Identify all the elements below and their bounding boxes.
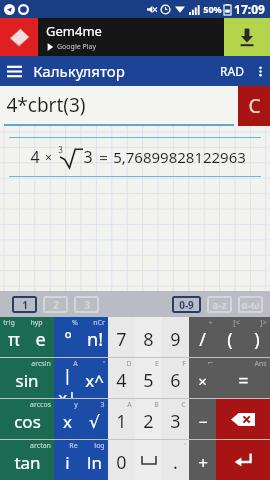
- button[interactable]: 2: [43, 296, 68, 313]
- staticText: 50%: [203, 3, 222, 15]
- button[interactable]: y: [54, 399, 81, 439]
- staticText: a-z: [212, 298, 227, 312]
- button[interactable]: C: [162, 399, 189, 439]
- staticText: 2: [143, 409, 154, 434]
- button[interactable]: 9: [162, 317, 189, 357]
- staticText: 0: [116, 450, 127, 475]
- staticText: sin: [15, 369, 39, 392]
- button[interactable]: −: [189, 399, 216, 439]
- staticText: A: [73, 359, 78, 369]
- button[interactable]: Enter: [216, 440, 270, 480]
- staticText: arctan: [30, 441, 51, 451]
- button[interactable]: hyp: [27, 317, 54, 357]
- staticText: ln: [87, 451, 102, 474]
- button[interactable]: arctan: [0, 440, 54, 480]
- button[interactable]: 4: [9, 137, 261, 177]
- button[interactable]: D: [108, 358, 135, 398]
- button[interactable]: ÷: [189, 317, 216, 357]
- button[interactable]: [<: [216, 317, 243, 357]
- staticText: =: [99, 147, 108, 167]
- staticText: ': [184, 441, 186, 451]
- button[interactable]: ': [162, 440, 189, 480]
- button[interactable]: B: [135, 399, 162, 439]
- staticText: i: [65, 451, 70, 474]
- button[interactable]: ]>: [243, 317, 270, 357]
- button[interactable]: 8: [135, 317, 162, 357]
- button[interactable]: ': [81, 358, 108, 398]
- button[interactable]: A: [54, 358, 81, 398]
- button[interactable]: α-ω: [238, 296, 263, 313]
- button[interactable]: 0-9: [172, 296, 201, 313]
- staticText: F: [182, 359, 186, 369]
- button[interactable]: 3: [81, 399, 108, 439]
- staticText: 2: [53, 298, 59, 312]
- staticText: [<: [233, 318, 240, 328]
- staticText: x^: [85, 369, 104, 392]
- button[interactable]: F: [162, 358, 189, 398]
- button[interactable]: 1: [12, 296, 37, 313]
- button[interactable]: 3: [74, 296, 99, 313]
- staticText: |x|: [54, 363, 81, 398]
- button[interactable]: nCr: [81, 317, 108, 357]
- button[interactable]: arcsin: [0, 358, 54, 398]
- staticText: D: [126, 359, 132, 369]
- staticText: α-ω: [241, 298, 260, 312]
- button[interactable]: +: [189, 440, 216, 480]
- staticText: Ans: [254, 359, 267, 369]
- button[interactable]: Gem4me: [0, 18, 270, 56]
- staticText: (: [227, 327, 233, 352]
- staticText: A: [127, 400, 132, 410]
- staticText: 3: [84, 298, 90, 312]
- button[interactable]: log: [81, 440, 108, 480]
- staticText: E: [155, 359, 159, 369]
- staticText: B: [154, 400, 159, 410]
- staticText: 4*cbrt(3): [6, 92, 86, 118]
- staticText: ': [103, 359, 105, 369]
- staticText: 4: [30, 146, 40, 168]
- staticText: x: [63, 410, 72, 433]
- staticText: 7: [116, 327, 127, 352]
- button[interactable]: RAD: [220, 63, 244, 79]
- staticText: Калькулятор: [33, 61, 125, 81]
- button[interactable]: Menu: [0, 57, 28, 85]
- button[interactable]: Install: [224, 18, 270, 56]
- staticText: π: [8, 327, 20, 352]
- button[interactable]: ⌐: [189, 358, 216, 398]
- staticText: e: [35, 327, 46, 352]
- staticText: =: [238, 368, 249, 393]
- button[interactable]: a-z: [207, 296, 232, 313]
- staticText: %: [72, 318, 78, 328]
- staticText: .: [173, 450, 178, 475]
- button[interactable]: trig: [0, 317, 27, 357]
- staticText: 3: [170, 409, 181, 434]
- button[interactable]: A: [108, 399, 135, 439]
- staticText: y: [74, 400, 78, 410]
- staticText: Gem4me: [46, 22, 102, 40]
- staticText: +: [198, 451, 208, 474]
- button[interactable]: arccos: [0, 399, 54, 439]
- staticText: 1: [116, 409, 127, 434]
- staticText: ×: [198, 371, 207, 391]
- button[interactable]: More options: [250, 56, 270, 86]
- staticText: 4: [116, 368, 127, 393]
- staticText: arccos: [30, 400, 51, 410]
- button[interactable]: Ans: [216, 358, 270, 398]
- staticText: /: [199, 327, 206, 352]
- staticText: C: [248, 93, 261, 119]
- staticText: −: [198, 411, 208, 433]
- button[interactable]: E: [135, 358, 162, 398]
- staticText: cos: [14, 410, 41, 433]
- button[interactable]: %: [54, 317, 81, 357]
- staticText: 17:09: [234, 1, 265, 17]
- staticText: ): [254, 327, 260, 352]
- button[interactable]: Space: [135, 440, 162, 480]
- button[interactable]: 0: [108, 440, 135, 480]
- staticText: 5: [143, 368, 154, 393]
- staticText: ÷: [208, 318, 213, 328]
- staticText: √: [89, 412, 100, 432]
- button[interactable]: 4*cbrt(3): [0, 86, 238, 126]
- button[interactable]: 7: [108, 317, 135, 357]
- button[interactable]: C: [238, 86, 270, 126]
- button[interactable]: Backspace: [216, 399, 270, 439]
- button[interactable]: Re: [54, 440, 81, 480]
